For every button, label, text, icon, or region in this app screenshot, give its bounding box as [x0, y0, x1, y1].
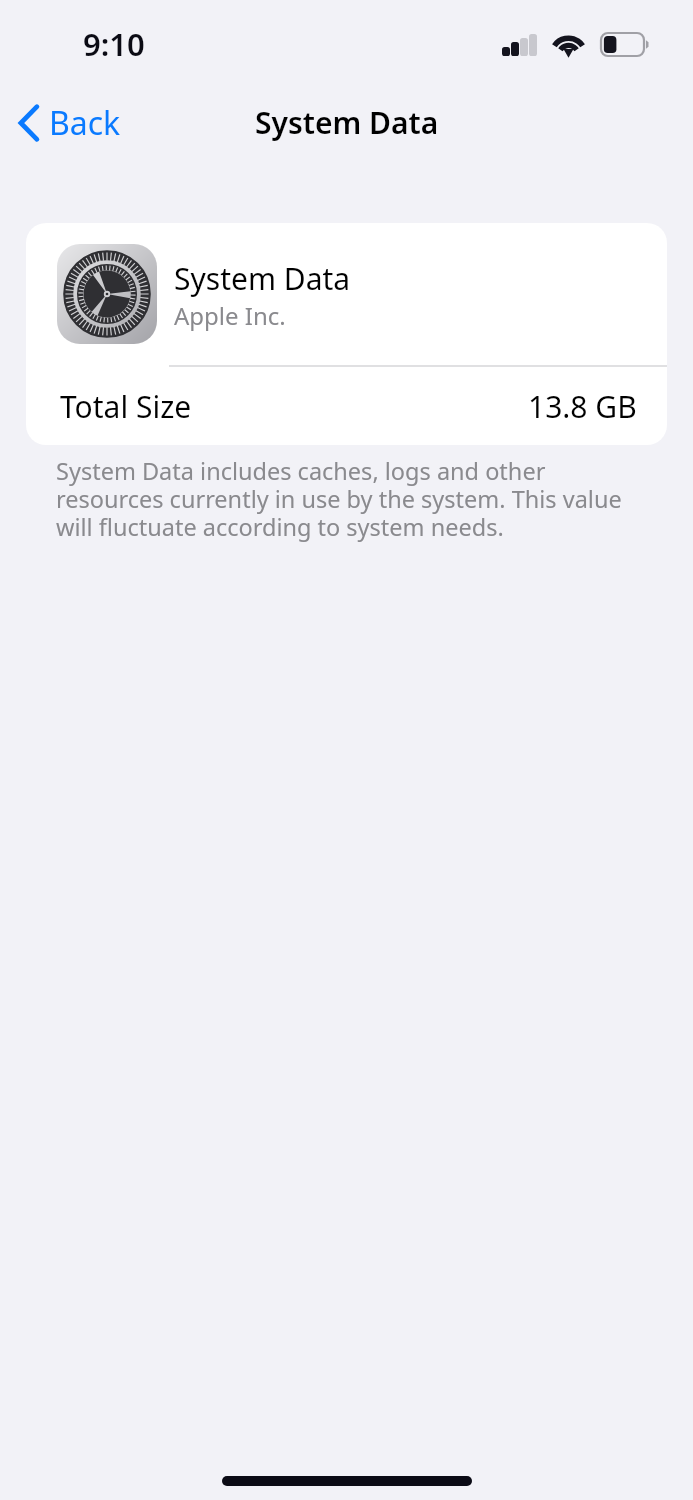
- staticText: System Data includes caches, logs and ot…: [56, 455, 631, 543]
- other: Settings app icon: [57, 244, 157, 344]
- staticText: System Data: [174, 258, 351, 299]
- staticText: Apple Inc.: [174, 299, 286, 332]
- button[interactable]: Settings app icon: [26, 223, 667, 365]
- staticText: 13.8 GB: [528, 386, 637, 427]
- button[interactable]: Back: [0, 91, 141, 155]
- staticText: System Data: [255, 102, 439, 143]
- staticText: Total Size: [60, 386, 192, 427]
- staticText: Back: [49, 101, 121, 145]
- staticText: 9:10: [83, 23, 145, 65]
- button[interactable]: Total Size: [26, 367, 667, 445]
